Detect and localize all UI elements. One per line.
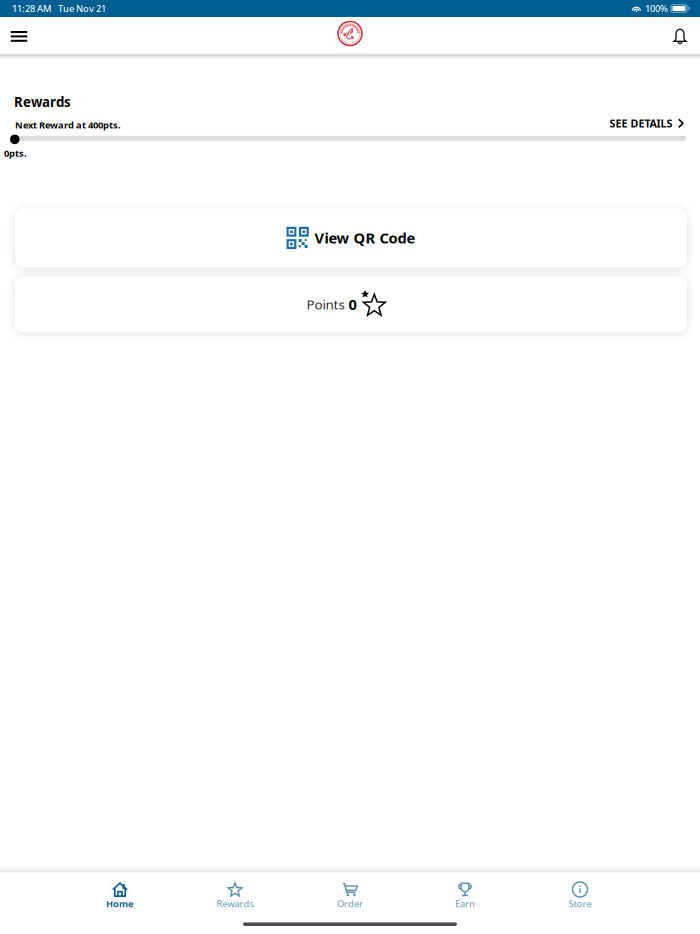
staticText: Points (306, 295, 344, 313)
button[interactable]: SEE DETAILS (610, 118, 684, 132)
button[interactable]: Menu (2, 17, 36, 55)
staticText: Rewards (14, 93, 71, 111)
staticText: 0pts. (4, 147, 27, 159)
staticText: 0 (348, 294, 356, 314)
button[interactable]: Order (292, 868, 407, 933)
staticText: Rewards (216, 897, 253, 910)
staticText: Next Reward at 400pts. (15, 119, 121, 131)
staticText: View QR Code (314, 228, 415, 247)
staticText: Earn (455, 897, 475, 910)
button[interactable]: Notifications (662, 17, 698, 55)
button[interactable]: Earn (407, 868, 522, 933)
staticText: 11:28 AM (12, 2, 52, 15)
button[interactable]: Home (62, 868, 177, 933)
staticText: 100% (645, 2, 668, 15)
button[interactable]: Rewards (177, 868, 292, 933)
staticText: Home (106, 897, 134, 910)
staticText: Tue Nov 21 (58, 2, 106, 15)
button[interactable]: View QR Code (15, 208, 687, 267)
staticText: Store (568, 897, 591, 910)
staticText: SEE DETAILS (610, 116, 673, 130)
staticText: Order (337, 897, 363, 910)
button[interactable]: Store (522, 868, 637, 933)
